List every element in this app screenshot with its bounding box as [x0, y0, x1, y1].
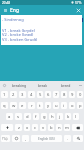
staticText: k	[67, 114, 70, 120]
staticText: Eng	[10, 7, 20, 14]
staticText: x	[26, 125, 29, 131]
button[interactable]: u	[53, 102, 59, 109]
staticText: e	[21, 103, 24, 109]
staticText: h	[51, 114, 54, 120]
staticText: .	[67, 136, 69, 142]
staticText: breaking	[12, 83, 27, 88]
button[interactable]: p	[77, 102, 83, 109]
staticText: - Sindrenog	[2, 17, 24, 22]
button[interactable]: 3	[19, 91, 26, 98]
staticText: q	[3, 103, 6, 109]
button[interactable]: t	[37, 102, 43, 109]
staticText: b	[50, 125, 53, 131]
staticText: c	[34, 125, 37, 131]
button[interactable]: .	[64, 135, 71, 142]
staticText: n	[58, 125, 61, 131]
other: Emoji	[15, 137, 18, 140]
button[interactable]: Menu	[2, 7, 8, 13]
staticText: i	[63, 103, 65, 109]
staticText: English (US)	[38, 137, 55, 141]
button[interactable]: break	[31, 81, 54, 89]
button[interactable]: Search	[73, 135, 83, 142]
button[interactable]: m	[64, 124, 70, 131]
button[interactable]: 0	[77, 91, 83, 98]
staticText: 4	[30, 92, 33, 98]
button[interactable]: y	[45, 102, 51, 109]
button[interactable]: 6	[45, 91, 51, 98]
button[interactable]: Backspace	[72, 124, 83, 131]
staticText: m	[65, 125, 69, 131]
staticText: 1	[3, 92, 6, 98]
staticText: 9	[71, 92, 74, 98]
button[interactable]: Keyboard settings	[0, 81, 8, 89]
staticText: 2	[12, 92, 15, 98]
button[interactable]: q	[1, 102, 8, 109]
button[interactable]: r	[28, 102, 35, 109]
staticText: f	[35, 114, 37, 120]
staticText: u	[55, 103, 58, 109]
button[interactable]: a	[6, 113, 13, 120]
staticText: s	[17, 114, 20, 120]
staticText: d	[26, 114, 29, 120]
staticText: z	[18, 125, 20, 131]
button[interactable]: ,	[22, 135, 29, 142]
staticText: 7	[55, 92, 58, 98]
staticText: w	[12, 103, 16, 109]
staticText: V1 - break (bryde)	[2, 28, 36, 33]
staticText: breed	[61, 83, 71, 88]
button[interactable]: 9	[69, 91, 75, 98]
button[interactable]: l	[73, 113, 79, 120]
staticText: ?1☺	[2, 137, 9, 141]
button[interactable]: Shift	[1, 124, 13, 131]
button[interactable]: v	[40, 124, 46, 131]
staticText: 20:48	[2, 1, 11, 5]
staticText: 8	[63, 92, 66, 98]
button[interactable]: ?1☺	[1, 135, 10, 142]
button[interactable]: 8	[61, 91, 67, 98]
staticText: o	[71, 103, 74, 109]
button[interactable]: k	[65, 113, 71, 120]
button[interactable]: i	[61, 102, 67, 109]
staticText: a	[8, 114, 11, 120]
button[interactable]: z	[15, 124, 22, 131]
staticText: 57%	[75, 1, 82, 5]
button[interactable]: d	[24, 113, 31, 120]
staticText: 5	[39, 92, 42, 98]
button[interactable]: 5	[37, 91, 43, 98]
button[interactable]: g	[41, 113, 47, 120]
staticText: v	[42, 125, 45, 131]
button[interactable]: b	[48, 124, 54, 131]
button[interactable]: f	[33, 113, 39, 120]
button[interactable]: j	[57, 113, 63, 120]
staticText: break	[38, 83, 48, 88]
button[interactable]: o	[69, 102, 75, 109]
button[interactable]: h	[49, 113, 55, 120]
button[interactable]: w	[10, 102, 17, 109]
staticText: 3	[21, 92, 24, 98]
button[interactable]: Clear	[75, 7, 82, 14]
button[interactable]: Emoji	[12, 135, 20, 142]
button[interactable]: 2	[10, 91, 17, 98]
button[interactable]: breaking	[8, 81, 31, 89]
staticText: 0	[79, 92, 82, 98]
staticText: V3 - broken (brudt)	[2, 37, 38, 42]
button[interactable]: 7	[53, 91, 59, 98]
button[interactable]: English (US)	[31, 135, 62, 142]
other: Backspace	[76, 126, 80, 130]
staticText: p	[79, 103, 82, 109]
staticText: t	[39, 103, 41, 109]
button[interactable]: 4	[28, 91, 35, 98]
button[interactable]: 1	[1, 91, 8, 98]
button[interactable]: s	[15, 113, 22, 120]
staticText: j	[59, 114, 61, 120]
button[interactable]: breed	[54, 81, 77, 89]
button[interactable]: More suggestions	[77, 81, 84, 89]
button[interactable]: x	[24, 124, 30, 131]
other: Shift	[6, 126, 9, 129]
staticText: ,	[25, 136, 27, 142]
staticText: r	[31, 103, 33, 109]
button[interactable]: n	[56, 124, 62, 131]
staticText: l	[75, 114, 77, 120]
button[interactable]: c	[32, 124, 38, 131]
button[interactable]: e	[19, 102, 26, 109]
